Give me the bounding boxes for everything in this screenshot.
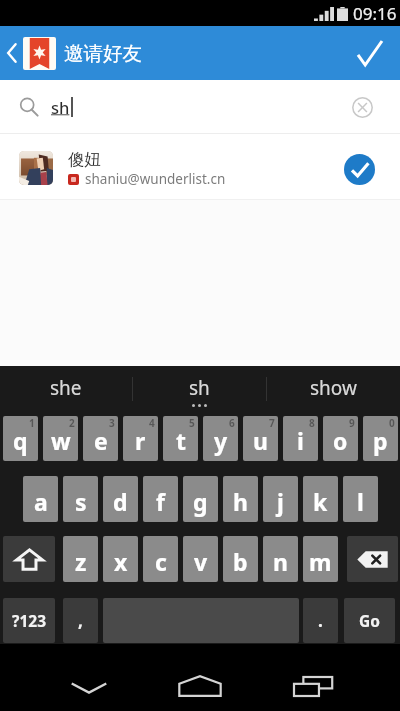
button[interactable]: Shift [3, 536, 55, 582]
staticText: z [75, 546, 87, 577]
button[interactable]: f [143, 476, 178, 522]
staticText: j [277, 486, 284, 517]
staticText: 4 [149, 416, 155, 430]
button[interactable]: k [303, 476, 338, 522]
staticText: v [194, 546, 208, 577]
button[interactable]: e [83, 416, 118, 461]
staticText: k [313, 486, 328, 517]
button[interactable]: , [63, 598, 98, 643]
staticText: she [50, 375, 82, 401]
staticText: 傻妞 [68, 149, 101, 170]
staticText: show [310, 375, 357, 401]
button[interactable]: Home [144, 644, 256, 711]
staticText: m [309, 546, 332, 577]
button[interactable]: d [103, 476, 138, 522]
button[interactable]: Hide keyboard [0, 644, 144, 711]
button[interactable]: ?123 [3, 598, 55, 643]
button[interactable]: a [23, 476, 58, 522]
button[interactable]: sh [133, 366, 266, 412]
staticText: f [156, 486, 165, 517]
staticText: 7 [269, 416, 275, 430]
button[interactable]: n [263, 536, 298, 582]
button[interactable]: show [267, 366, 400, 412]
staticText: w [51, 425, 71, 456]
staticText: t [176, 425, 186, 456]
button[interactable]: x [103, 536, 138, 582]
button[interactable]: m [303, 536, 338, 582]
staticText: s [75, 486, 87, 517]
staticText: q [13, 425, 28, 456]
staticText: 8 [309, 416, 315, 430]
button[interactable]: o [323, 416, 358, 461]
staticText: 3 [109, 416, 115, 430]
button[interactable]: Selected [344, 154, 375, 185]
button[interactable]: y [203, 416, 238, 461]
button[interactable]: Backspace [347, 536, 398, 582]
button[interactable]: p [363, 416, 398, 461]
button[interactable]: r [123, 416, 158, 461]
staticText: h [233, 486, 248, 517]
staticText: u [253, 425, 268, 456]
staticText: 1 [29, 416, 35, 430]
button[interactable]: sh [0, 80, 400, 134]
staticText: sh [189, 375, 210, 401]
other: Backspace [357, 551, 388, 568]
button[interactable]: g [183, 476, 218, 522]
staticText: ?123 [12, 610, 46, 631]
staticText: shaniu@wunderlist.cn [85, 170, 226, 188]
staticText: l [357, 486, 364, 517]
button[interactable]: q [3, 416, 38, 461]
other: Back [6, 43, 18, 63]
other: Shift [16, 549, 43, 570]
button[interactable]: h [223, 476, 258, 522]
button[interactable]: b [223, 536, 258, 582]
staticText: sh [51, 96, 70, 118]
staticText: . [318, 609, 323, 632]
button[interactable]: Back [0, 26, 142, 80]
button[interactable]: j [263, 476, 298, 522]
staticText: c [155, 546, 167, 577]
button[interactable]: l [343, 476, 378, 522]
button[interactable]: i [283, 416, 318, 461]
staticText: y [214, 425, 228, 456]
staticText: p [373, 425, 388, 456]
staticText: i [297, 425, 304, 456]
staticText: 5 [189, 416, 195, 430]
button[interactable]: Go [344, 598, 395, 643]
button[interactable]: v [183, 536, 218, 582]
button[interactable]: Recent apps [256, 644, 400, 711]
staticText: a [34, 486, 48, 517]
staticText: , [78, 609, 83, 632]
button[interactable]: she [0, 366, 132, 412]
button[interactable]: s [63, 476, 98, 522]
button[interactable]: c [143, 536, 178, 582]
staticText: x [114, 546, 128, 577]
staticText: 2 [69, 416, 75, 430]
button[interactable]: w [43, 416, 78, 461]
staticText: 09:16 [353, 2, 397, 25]
button[interactable]: Clear [340, 85, 384, 129]
button[interactable]: t [163, 416, 198, 461]
staticText: Go [359, 610, 380, 631]
staticText: b [233, 546, 248, 577]
button[interactable]: . [303, 598, 338, 643]
button[interactable]: Done [339, 26, 400, 80]
staticText: e [94, 425, 108, 456]
staticText: 邀请好友 [64, 41, 142, 66]
staticText: 9 [349, 416, 355, 430]
staticText: g [193, 486, 208, 517]
staticText: r [135, 425, 146, 456]
staticText: 6 [229, 416, 235, 430]
staticText: 0 [389, 416, 395, 430]
button[interactable]: u [243, 416, 278, 461]
staticText: d [113, 486, 128, 517]
button[interactable]: z [63, 536, 98, 582]
staticText: n [273, 546, 288, 577]
button[interactable]: 傻妞 [0, 134, 400, 200]
staticText: o [333, 425, 348, 456]
